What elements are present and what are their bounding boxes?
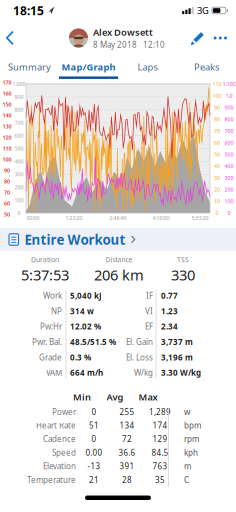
staticText: 174 — [152, 420, 167, 431]
staticText: 129 — [152, 434, 167, 444]
staticText: 500 — [14, 145, 23, 152]
staticText: Summary — [8, 61, 51, 73]
staticText: 2.34 — [161, 321, 178, 332]
staticText: 314 w — [70, 306, 94, 316]
staticText: Pwr. Bal. — [32, 337, 62, 347]
staticText: NP — [51, 306, 62, 316]
staticText: 134 — [119, 420, 134, 431]
staticText: TSS — [177, 255, 189, 264]
staticText: rpm — [184, 434, 199, 444]
staticText: 800 — [14, 106, 23, 113]
staticText: 3,737 m — [161, 337, 193, 347]
button[interactable]: Entire Workout — [0, 228, 236, 251]
staticText: 763 — [152, 461, 167, 471]
staticText: 170 — [2, 79, 11, 86]
staticText: 0.77 — [161, 290, 178, 301]
staticText: 60 — [4, 200, 10, 207]
staticText: 00:00 — [26, 214, 39, 222]
staticText: 400 — [14, 158, 23, 165]
staticText: 600 — [224, 139, 233, 146]
staticText: Max — [138, 391, 157, 403]
staticText: IF — [146, 290, 153, 301]
staticText: 36.6 — [118, 447, 135, 458]
staticText: 4:10:00 — [152, 214, 169, 222]
staticText: m — [184, 461, 191, 471]
staticText: 400 — [224, 162, 233, 170]
staticText: C — [184, 474, 189, 485]
staticText: 0.3 % — [70, 352, 91, 363]
staticText: 100 — [224, 198, 233, 205]
button[interactable]: Map/Graph — [59, 55, 118, 79]
staticText: 100 — [2, 156, 11, 163]
staticText: 3.30 W/kg — [161, 367, 201, 378]
staticText: Peaks — [194, 61, 219, 73]
staticText: 1,100 — [222, 80, 235, 88]
staticText: Avg — [106, 391, 123, 403]
staticText: 60 — [214, 139, 220, 146]
staticText: 40 — [214, 162, 220, 170]
staticText: 10 — [214, 198, 220, 205]
staticText: 0 — [91, 406, 96, 417]
staticText: Min — [73, 391, 91, 403]
staticText: 206 km — [94, 265, 144, 285]
staticText: 0.00 — [85, 447, 102, 458]
staticText: 30 — [214, 174, 220, 181]
staticText: 12.02 % — [70, 321, 101, 332]
staticText: 3,196 m — [161, 352, 193, 363]
staticText: Entire Workout — [24, 231, 125, 248]
staticText: 140 — [2, 112, 11, 119]
staticText: Heart Rate — [36, 420, 76, 431]
staticText: 21 — [89, 474, 99, 485]
staticText: Distance — [105, 255, 132, 264]
staticText: -13 — [87, 461, 100, 471]
staticText: 35 — [155, 474, 165, 485]
staticText: Power — [52, 406, 76, 417]
staticText: kph — [184, 447, 198, 458]
staticText: bpm — [184, 420, 201, 431]
staticText: 300 — [14, 171, 23, 178]
staticText: 600 — [14, 132, 23, 139]
staticText: 0 — [215, 209, 218, 217]
staticText: 664 m/h — [70, 367, 103, 378]
button[interactable]: Peaks — [177, 55, 236, 79]
staticText: Pw:Hr — [40, 321, 62, 332]
staticText: El. Loss — [126, 352, 153, 363]
staticText: 50 — [214, 151, 220, 158]
staticText: 200 — [14, 184, 23, 191]
button[interactable]: Summary — [0, 55, 59, 79]
button[interactable]: Edit — [186, 25, 210, 50]
button[interactable]: Laps — [118, 55, 177, 79]
staticText: 200 — [224, 186, 233, 193]
staticText: 20 — [214, 186, 220, 193]
staticText: 110 — [2, 145, 11, 152]
staticText: 160 — [2, 90, 11, 97]
staticText: Laps — [137, 61, 157, 73]
staticText: 80 — [214, 116, 220, 123]
staticText: 500 — [224, 151, 233, 158]
staticText: 5:33:20 — [191, 214, 208, 222]
staticText: 2:46:40 — [109, 214, 126, 222]
staticText: 84.5 — [151, 447, 168, 458]
staticText: 28 — [122, 474, 132, 485]
staticText: 1.23 — [161, 306, 178, 316]
button[interactable]: More — [210, 28, 236, 47]
staticText: W/kg — [134, 367, 153, 378]
staticText: 3G — [197, 4, 209, 17]
staticText: 700 — [14, 119, 23, 126]
staticText: 5:37:53 — [21, 265, 69, 285]
staticText: Grade — [39, 352, 62, 363]
staticText: 50 — [4, 211, 10, 218]
staticText: Cadence — [43, 434, 76, 444]
staticText: Work — [43, 290, 62, 301]
staticText: 900 — [224, 104, 233, 111]
staticText: 90 — [4, 167, 10, 174]
staticText: 130 — [2, 123, 11, 130]
staticText: 1,000 — [12, 80, 25, 88]
staticText: w — [184, 406, 190, 417]
staticText: 72 — [122, 434, 132, 444]
button[interactable]: Back — [0, 25, 15, 50]
staticText: 51 — [89, 420, 99, 431]
staticText: 8 May 2018 12:10 — [93, 39, 165, 50]
staticText: Duration — [31, 255, 59, 264]
